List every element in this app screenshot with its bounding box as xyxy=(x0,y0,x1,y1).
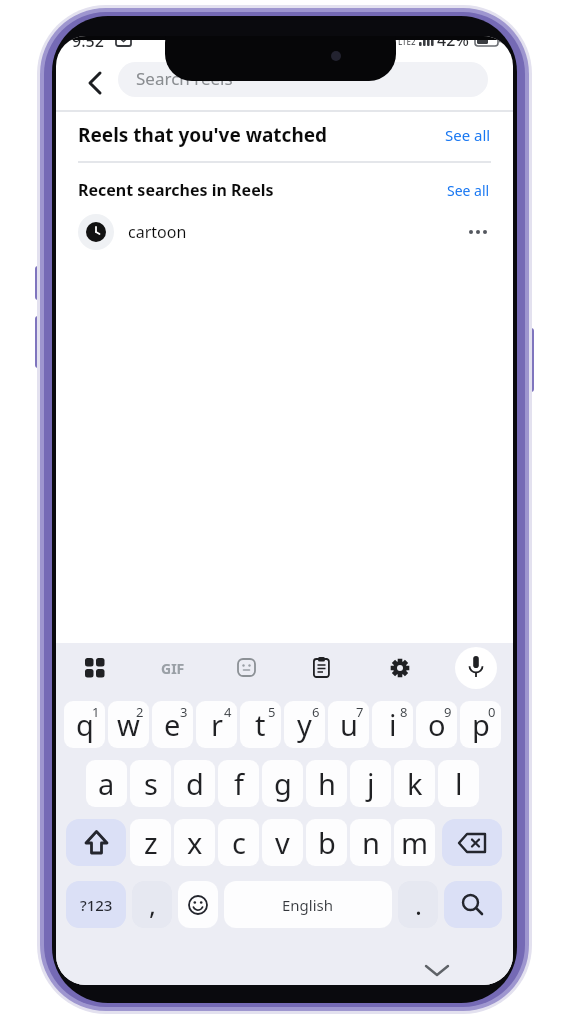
staticText: 4 xyxy=(224,703,232,721)
button[interactable]: a xyxy=(86,760,127,807)
button[interactable] xyxy=(313,657,331,678)
button[interactable]: y xyxy=(284,701,325,748)
staticText: ?123 xyxy=(80,895,113,915)
button[interactable]: l xyxy=(438,760,479,807)
staticText: q xyxy=(76,705,94,744)
staticText: b xyxy=(318,823,336,862)
staticText: 7 xyxy=(356,703,364,721)
staticText: cartoon xyxy=(128,221,187,243)
button[interactable]: English xyxy=(224,881,392,928)
staticText: 9:52 xyxy=(72,36,104,52)
button[interactable]: q xyxy=(64,701,105,748)
staticText: 6 xyxy=(312,703,320,721)
staticText: z xyxy=(144,823,158,862)
button[interactable] xyxy=(442,819,502,866)
staticText: i xyxy=(389,705,397,744)
button[interactable] xyxy=(444,881,502,928)
staticText: Search reels xyxy=(136,67,233,90)
button[interactable]: v xyxy=(262,819,303,866)
button[interactable]: t xyxy=(240,701,281,748)
button[interactable]: d xyxy=(174,760,215,807)
button[interactable]: GIF xyxy=(158,659,188,677)
button[interactable] xyxy=(85,658,105,678)
button[interactable]: s xyxy=(130,760,171,807)
button[interactable] xyxy=(425,965,449,977)
staticText: e xyxy=(164,705,181,744)
button[interactable]: . xyxy=(398,881,438,928)
button[interactable]: k xyxy=(394,760,435,807)
button[interactable]: z xyxy=(130,819,171,866)
button[interactable] xyxy=(238,659,256,677)
button[interactable]: , xyxy=(132,881,172,928)
button[interactable]: p xyxy=(460,701,501,748)
button[interactable]: j xyxy=(350,760,391,807)
button[interactable]: x xyxy=(174,819,215,866)
staticText: 0 xyxy=(488,703,496,721)
button[interactable] xyxy=(66,819,126,866)
button[interactable]: See all xyxy=(433,125,491,145)
button[interactable] xyxy=(85,72,107,94)
staticText: m xyxy=(401,823,429,862)
button[interactable]: Search reels xyxy=(118,62,488,97)
staticText: Reels that you've watched xyxy=(78,122,328,148)
staticText: 42% xyxy=(437,36,469,51)
staticText: f xyxy=(234,764,244,803)
staticText: a xyxy=(98,764,115,803)
staticText: 3 xyxy=(180,703,188,721)
button[interactable]: w xyxy=(108,701,149,748)
staticText: u xyxy=(340,705,358,744)
staticText: GIF xyxy=(161,659,185,677)
staticText: Recent searches in Reels xyxy=(78,179,274,201)
staticText: t xyxy=(255,705,266,744)
button[interactable]: See all xyxy=(433,181,490,200)
staticText: g xyxy=(274,764,292,803)
staticText: k xyxy=(407,764,423,803)
staticText: l xyxy=(455,764,463,803)
staticText: , xyxy=(149,887,156,922)
button[interactable]: e xyxy=(152,701,193,748)
button[interactable]: c xyxy=(218,819,259,866)
button[interactable] xyxy=(178,881,218,928)
button[interactable]: cartoon xyxy=(56,208,513,256)
button[interactable]: u xyxy=(328,701,369,748)
button[interactable]: m xyxy=(394,819,435,866)
staticText: s xyxy=(144,764,158,803)
staticText: 5 xyxy=(268,703,276,721)
button[interactable]: o xyxy=(416,701,457,748)
button[interactable]: n xyxy=(350,819,391,866)
staticText: d xyxy=(186,764,204,803)
staticText: English xyxy=(282,895,334,915)
button[interactable]: i xyxy=(372,701,413,748)
staticText: j xyxy=(367,764,375,803)
staticText: 9 xyxy=(444,703,452,721)
button[interactable]: r xyxy=(196,701,237,748)
staticText: y xyxy=(297,705,312,744)
button[interactable]: b xyxy=(306,819,347,866)
staticText: v xyxy=(275,823,290,862)
staticText: c xyxy=(232,823,246,862)
staticText: . xyxy=(415,887,422,922)
button[interactable]: h xyxy=(306,760,347,807)
button[interactable]: g xyxy=(262,760,303,807)
staticText: See all xyxy=(445,125,491,145)
staticText: 1 xyxy=(92,703,100,721)
staticText: h xyxy=(318,764,336,803)
button[interactable] xyxy=(468,228,490,236)
staticText: p xyxy=(472,705,490,744)
staticText: w xyxy=(117,705,140,744)
button[interactable]: ?123 xyxy=(66,881,126,928)
staticText: o xyxy=(428,705,446,744)
staticText: 2 xyxy=(136,703,144,721)
staticText: 8 xyxy=(400,703,408,721)
staticText: r xyxy=(211,705,223,744)
staticText: x xyxy=(187,823,203,862)
button[interactable]: f xyxy=(218,760,259,807)
staticText: LTE2 xyxy=(398,36,416,47)
staticText: n xyxy=(362,823,380,862)
button[interactable] xyxy=(390,658,410,678)
staticText: See all xyxy=(447,181,490,200)
button[interactable] xyxy=(455,647,497,689)
